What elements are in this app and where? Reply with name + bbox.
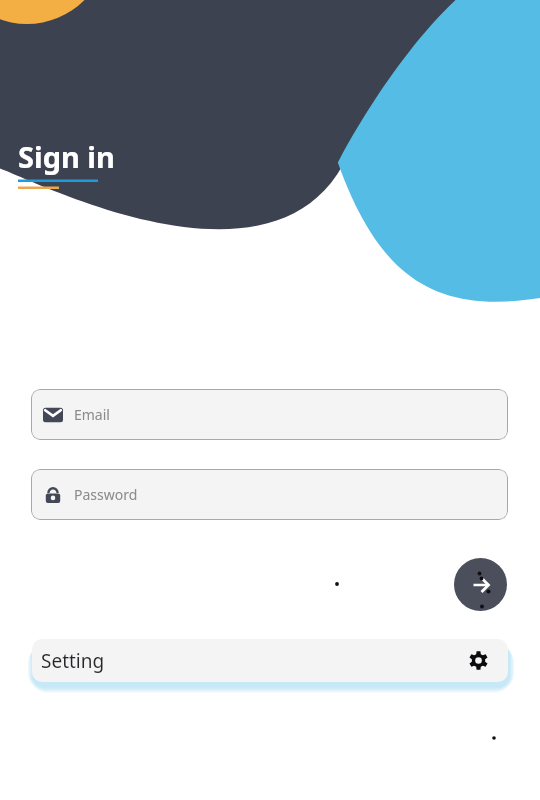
staticText: Setting <box>41 648 105 674</box>
staticText: Email <box>74 405 110 424</box>
button[interactable]: Setting <box>32 639 508 682</box>
staticText: Password <box>74 485 138 504</box>
button[interactable]: Continue <box>454 558 507 611</box>
button[interactable]: Password <box>31 469 508 520</box>
staticText: Sign in <box>18 137 115 176</box>
button[interactable]: Email <box>31 389 508 440</box>
